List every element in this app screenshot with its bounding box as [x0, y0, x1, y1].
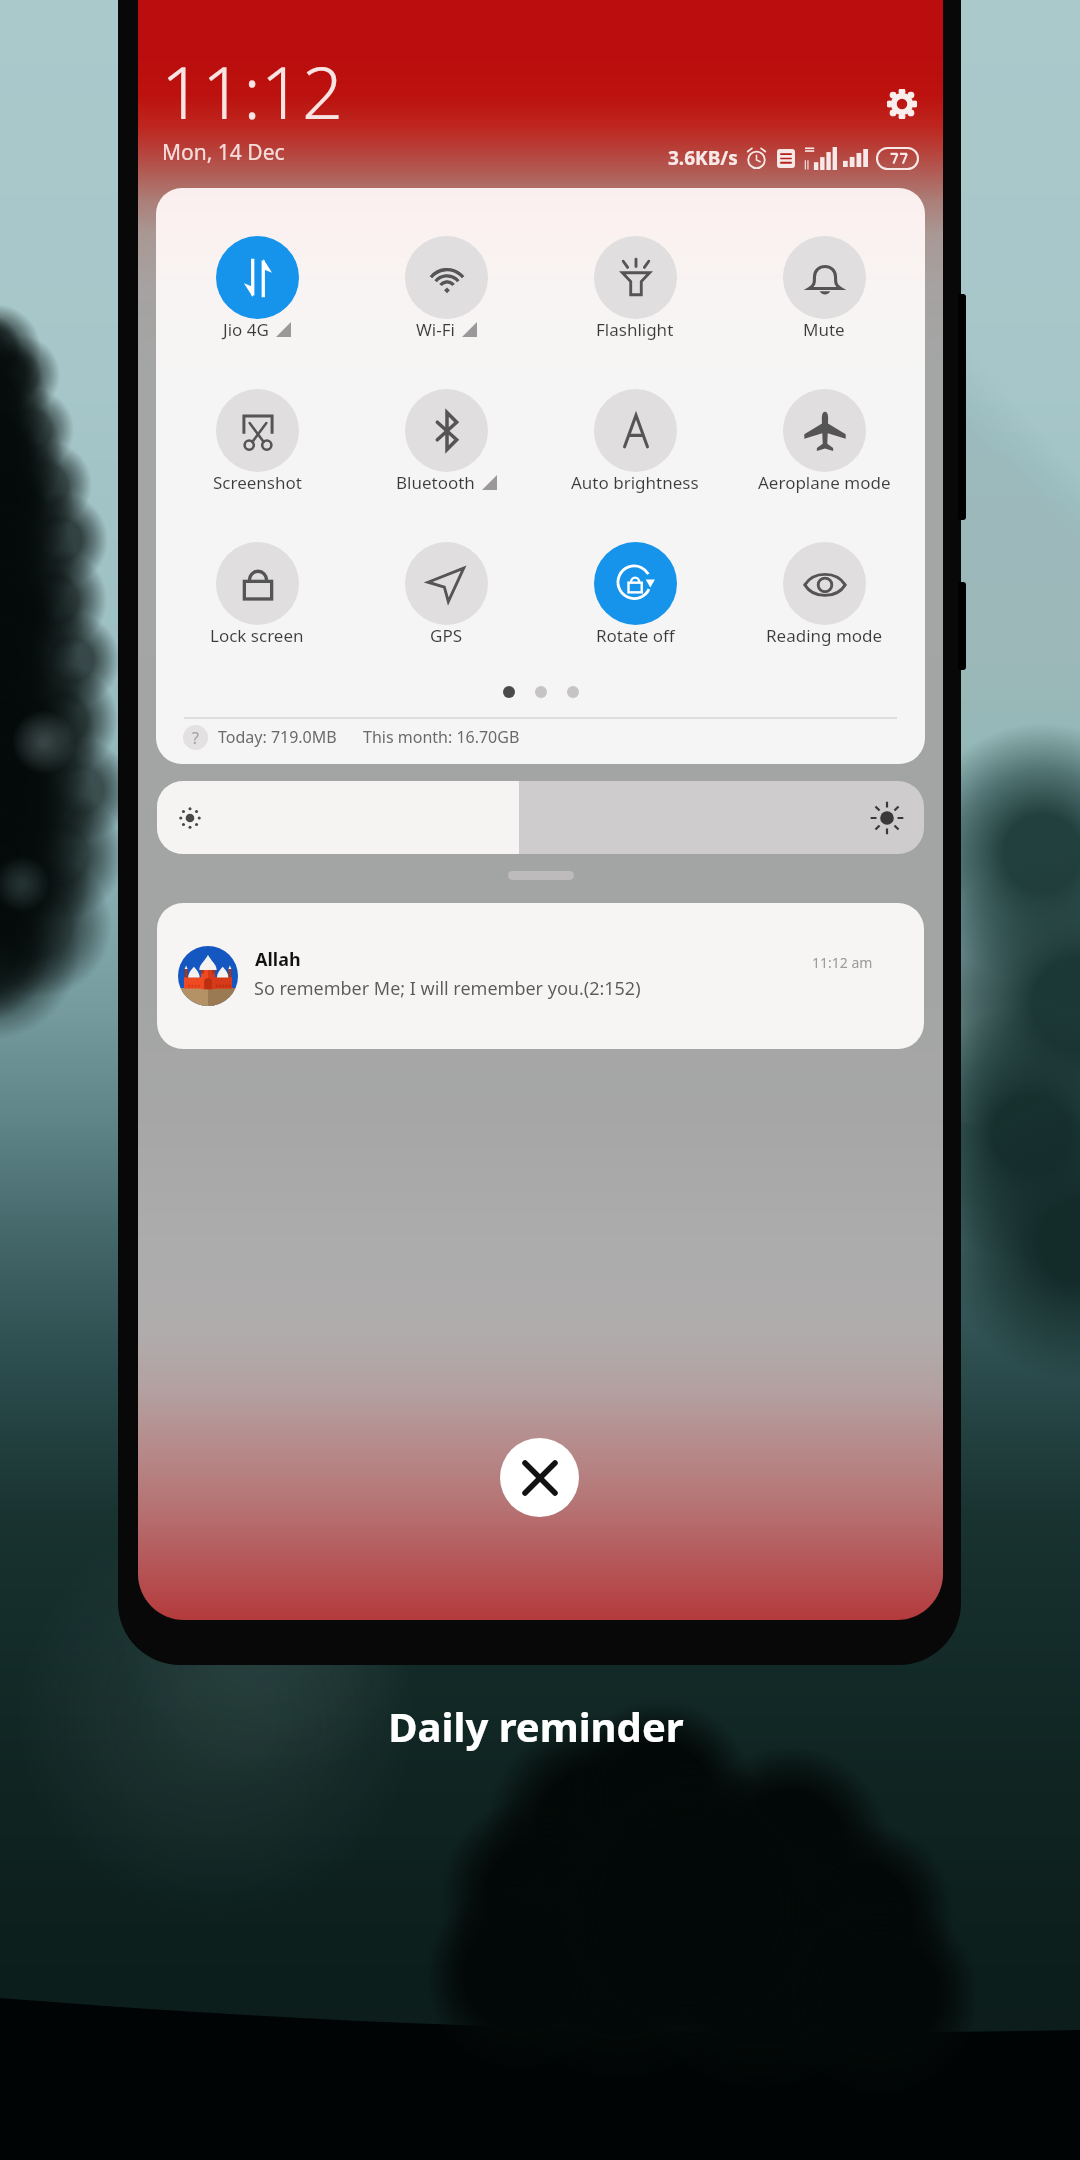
staticText: Mute — [803, 318, 845, 341]
button[interactable] — [724, 378, 924, 482]
staticText: 3.6KB/s — [668, 145, 738, 171]
staticText: GPS — [430, 624, 462, 647]
staticText: ? — [192, 727, 199, 749]
button[interactable] — [346, 225, 546, 329]
button[interactable] — [724, 531, 924, 635]
staticText: Rotate off — [596, 624, 675, 647]
staticText: This month: 16.70GB — [363, 726, 520, 748]
staticText: Screenshot — [213, 471, 302, 494]
staticText: Flashlight — [596, 318, 674, 341]
button[interactable] — [535, 531, 735, 635]
button[interactable] — [535, 225, 735, 329]
staticText: 11:12 — [161, 42, 344, 140]
button[interactable] — [157, 531, 357, 635]
staticText: Lock screen — [210, 624, 304, 647]
button[interactable]: Brightness — [157, 781, 924, 854]
staticText: Bluetooth — [396, 471, 475, 494]
button[interactable] — [157, 225, 357, 329]
button[interactable]: Allah — [157, 903, 924, 1049]
staticText: Auto brightness — [571, 471, 699, 494]
button[interactable] — [535, 378, 735, 482]
button[interactable] — [346, 378, 546, 482]
staticText: 11:12 am — [812, 953, 873, 972]
staticText: Daily reminder — [0, 1699, 1076, 1753]
staticText: Wi-Fi — [416, 318, 455, 341]
staticText: Aeroplane mode — [758, 471, 891, 494]
staticText: Allah — [255, 947, 301, 972]
staticText: Reading mode — [766, 624, 883, 647]
staticText: Mon, 14 Dec — [162, 138, 285, 167]
button[interactable]: Settings — [870, 72, 934, 136]
button[interactable] — [346, 531, 546, 635]
button[interactable] — [724, 225, 924, 329]
staticText: Jio 4G — [223, 318, 269, 341]
button[interactable]: Close — [500, 1438, 579, 1517]
button[interactable] — [157, 378, 357, 482]
staticText: Today: 719.0MB — [218, 726, 337, 748]
staticText: So remember Me; I will remember you.(2:1… — [254, 976, 641, 1001]
